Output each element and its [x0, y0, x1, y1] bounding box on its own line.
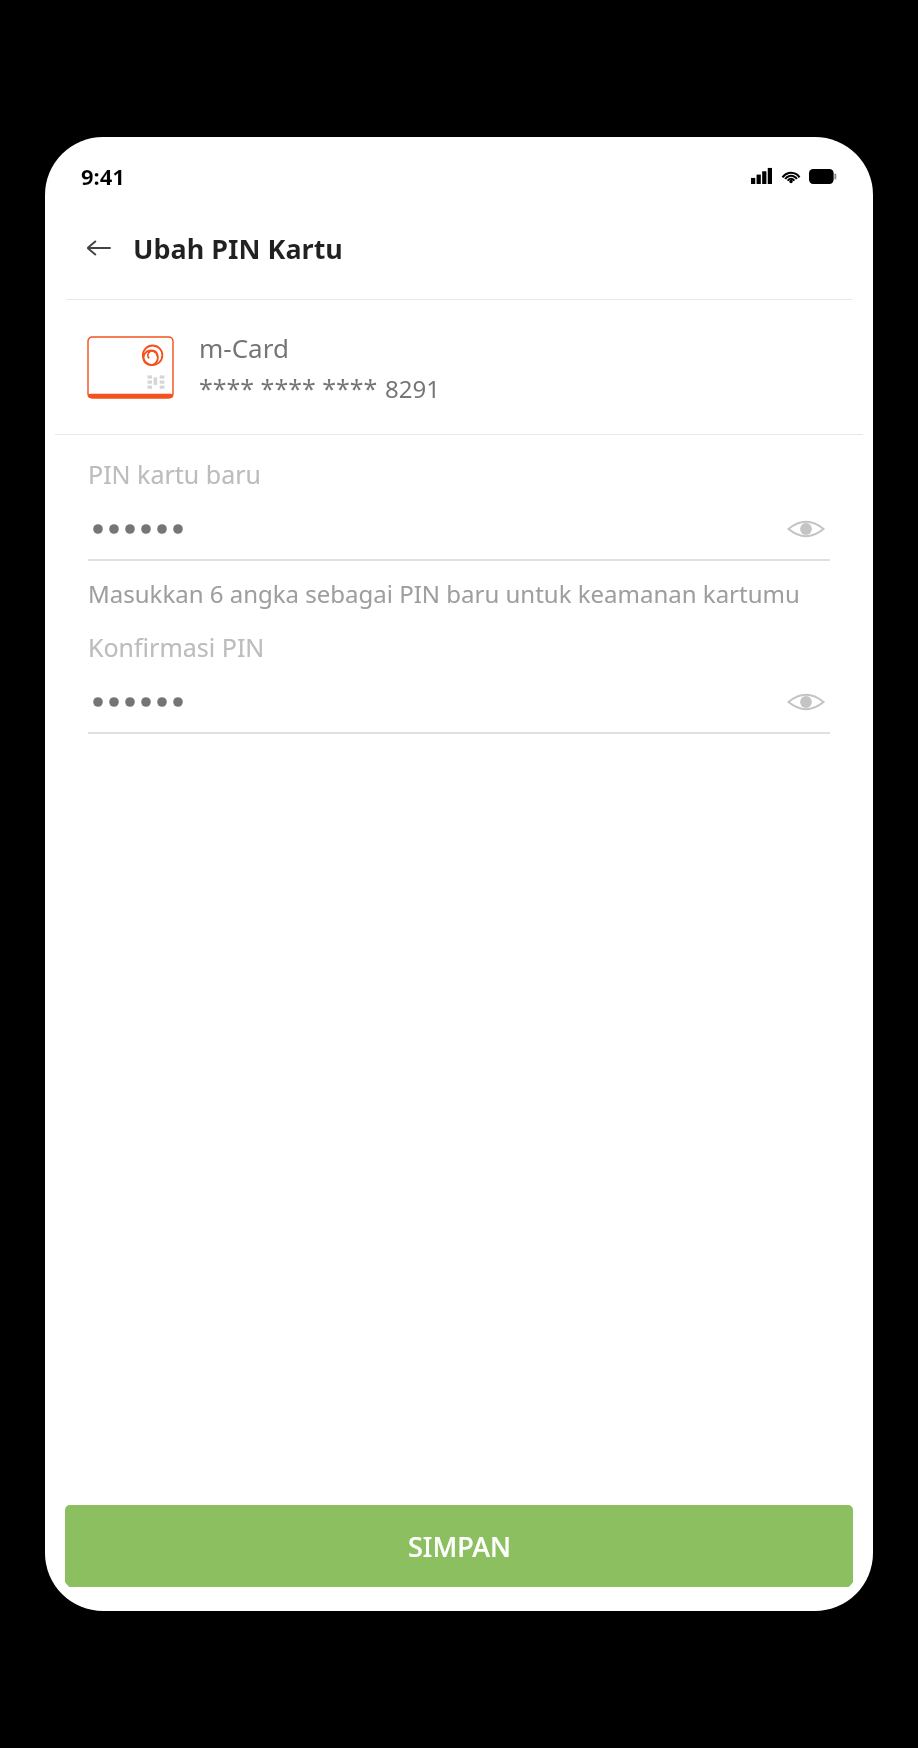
staticText: **** **** ****	[199, 371, 378, 405]
button[interactable]: Back	[77, 226, 121, 270]
button[interactable]: Toggle PIN visibility	[88, 505, 830, 553]
staticText: 9:41	[81, 161, 125, 191]
button[interactable]: Toggle PIN visibility	[88, 678, 830, 726]
staticText: PIN kartu baru	[88, 457, 261, 491]
staticText: Masukkan 6 angka sebagai PIN baru untuk …	[88, 577, 800, 610]
staticText: 8291	[385, 372, 440, 405]
staticText: SIMPAN	[408, 1528, 511, 1565]
button[interactable]: Toggle PIN visibility	[782, 505, 830, 553]
button[interactable]: Toggle PIN visibility	[782, 678, 830, 726]
staticText: Konfirmasi PIN	[88, 630, 265, 664]
button[interactable]: SIMPAN	[65, 1505, 853, 1587]
staticText: m-Card	[199, 330, 289, 365]
staticText: Ubah PIN Kartu	[133, 230, 343, 267]
button[interactable]: m-Card	[55, 300, 863, 434]
